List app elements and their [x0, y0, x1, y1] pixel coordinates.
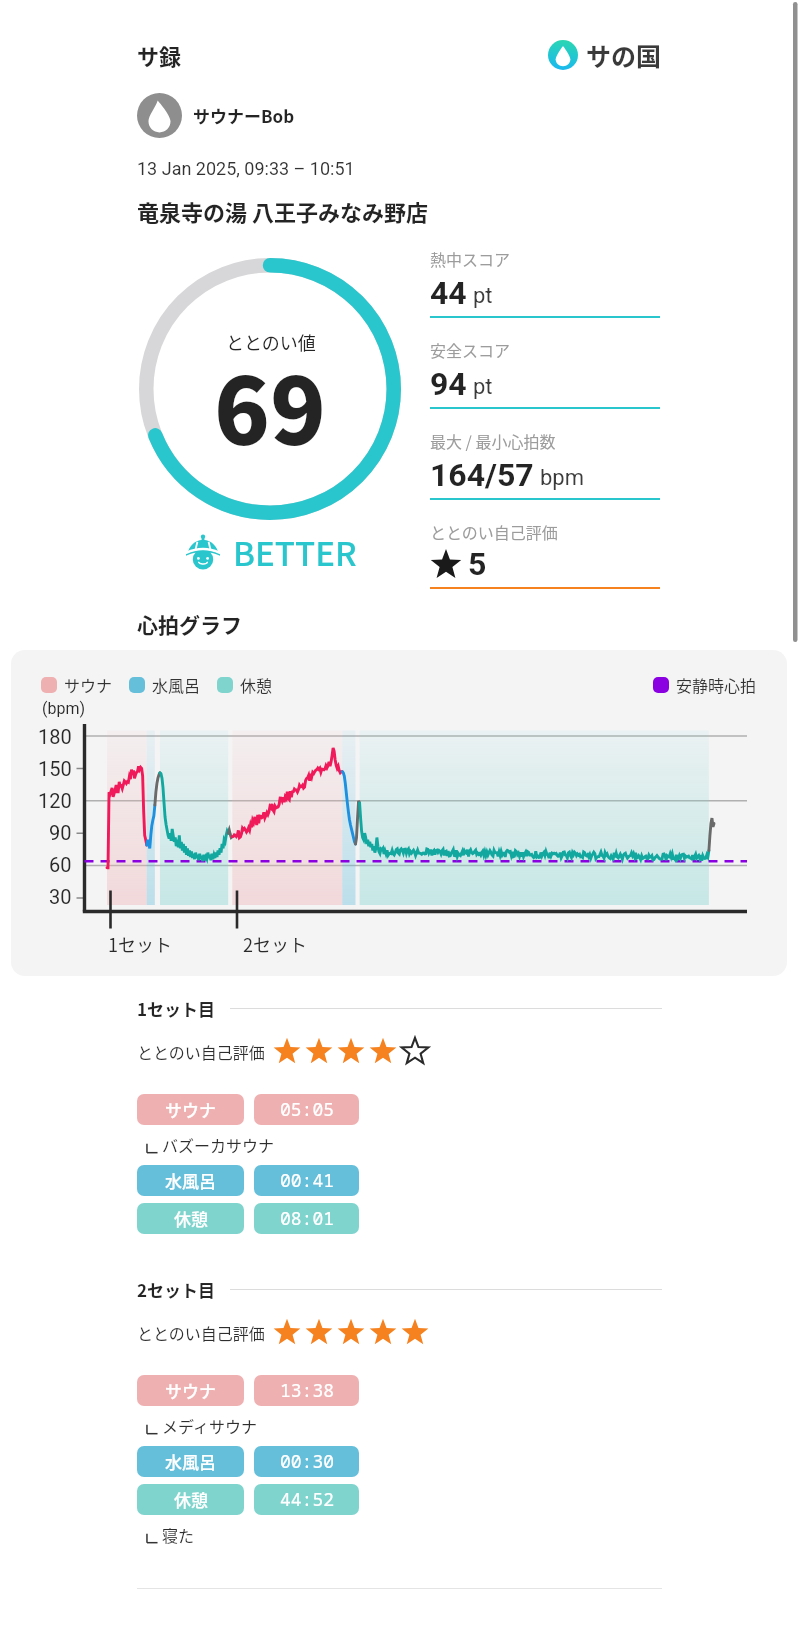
staticText: 水風呂	[152, 673, 201, 696]
staticText: 164/57	[430, 456, 534, 494]
staticText: ととのい自己評価	[137, 1321, 265, 1344]
button[interactable]: サウナ	[137, 1375, 359, 1406]
staticText: 心拍グラフ	[137, 609, 242, 639]
staticText: サ録	[137, 39, 182, 71]
staticText: ととのい自己評価	[430, 520, 558, 543]
staticText: 90	[49, 821, 72, 844]
button[interactable]: サウナーBob	[137, 93, 662, 138]
button[interactable]: 安全スコア	[430, 338, 660, 429]
staticText: 00:41	[280, 1168, 334, 1193]
staticText: 00:30	[280, 1449, 334, 1474]
staticText: ととのい値	[226, 329, 316, 355]
button[interactable]: サの国	[548, 37, 662, 73]
button[interactable]: サウナ	[137, 1094, 359, 1125]
staticText: 180	[38, 725, 72, 748]
staticText: 30	[49, 885, 72, 908]
button[interactable]: 水風呂	[129, 673, 201, 696]
staticText: bpm	[540, 465, 584, 491]
staticText: 休憩	[174, 1487, 208, 1512]
staticText: 1セット目	[137, 996, 216, 1021]
staticText: 竜泉寺の湯 八王子みなみ野店	[137, 195, 428, 227]
staticText: 水風呂	[165, 1168, 216, 1193]
button[interactable]: 安静時心拍	[653, 673, 757, 696]
staticText: 2セット目	[137, 1277, 216, 1302]
staticText: 水風呂	[165, 1449, 216, 1474]
staticText: 5	[468, 545, 487, 583]
staticText: 120	[38, 789, 72, 812]
button[interactable]: 休憩	[137, 1484, 359, 1515]
button[interactable]: 水風呂	[137, 1446, 359, 1477]
staticText: サウナーBob	[193, 103, 295, 128]
staticText: 05:05	[280, 1097, 334, 1122]
staticText: 寝た	[162, 1523, 195, 1546]
staticText: 2セット	[243, 931, 307, 957]
button[interactable]: サウナ	[41, 673, 113, 696]
staticText: 熱中スコア	[430, 247, 511, 270]
staticText: 44	[430, 274, 467, 312]
button[interactable]: ととのい自己評価	[430, 520, 660, 589]
staticText: メディサウナ	[162, 1414, 257, 1437]
staticText: 1セット	[108, 931, 172, 957]
staticText: 13 Jan 2025, 09:33 – 10:51	[137, 158, 355, 179]
staticText: サの国	[586, 37, 662, 73]
button[interactable]: 熱中スコア	[430, 247, 660, 338]
button[interactable]: 休憩	[137, 1203, 359, 1234]
staticText: サウナ	[165, 1097, 216, 1122]
staticText: サウナ	[165, 1378, 216, 1403]
staticText: pt	[473, 283, 493, 309]
staticText: BETTER	[233, 528, 357, 576]
staticText: 150	[38, 757, 72, 780]
staticText: 94	[430, 365, 467, 403]
staticText: 60	[49, 853, 72, 876]
staticText: (bpm)	[42, 699, 86, 718]
staticText: バズーカサウナ	[162, 1133, 275, 1156]
button[interactable]: 最大 / 最小心拍数	[430, 429, 660, 520]
button[interactable]: BETTER	[183, 528, 357, 576]
staticText: 最大 / 最小心拍数	[430, 429, 556, 452]
staticText: 安静時心拍	[676, 673, 757, 696]
staticText: 安全スコア	[430, 338, 511, 361]
staticText: サウナ	[64, 673, 113, 696]
staticText: 44:52	[280, 1487, 334, 1512]
staticText: 13:38	[280, 1378, 334, 1403]
staticText: 休憩	[174, 1206, 208, 1231]
staticText: 69	[214, 338, 327, 471]
button[interactable]: 水風呂	[137, 1165, 359, 1196]
staticText: ととのい自己評価	[137, 1040, 265, 1063]
button[interactable]: 休憩	[217, 673, 273, 696]
staticText: pt	[473, 374, 493, 400]
staticText: 08:01	[280, 1206, 334, 1231]
staticText: 休憩	[240, 673, 273, 696]
